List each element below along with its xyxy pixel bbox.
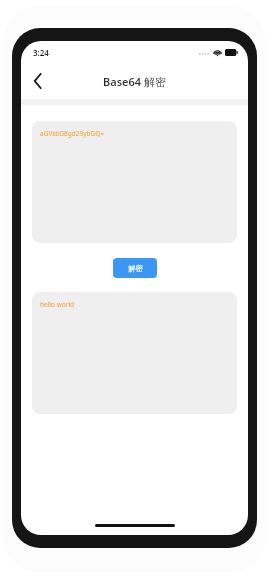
staticText: aGVsbG8gd29ybGQ= bbox=[40, 129, 105, 138]
staticText: hello world bbox=[40, 300, 75, 309]
button[interactable]: aGVsbG8gd29ybGQ= bbox=[32, 121, 237, 243]
staticText: 3:24 bbox=[33, 47, 49, 58]
button[interactable]: Back bbox=[21, 63, 55, 99]
staticText: 解密 bbox=[128, 264, 143, 273]
staticText: Base64 解密 bbox=[103, 74, 166, 89]
button[interactable]: hello world bbox=[32, 292, 237, 414]
button[interactable]: 解密 bbox=[113, 258, 157, 278]
